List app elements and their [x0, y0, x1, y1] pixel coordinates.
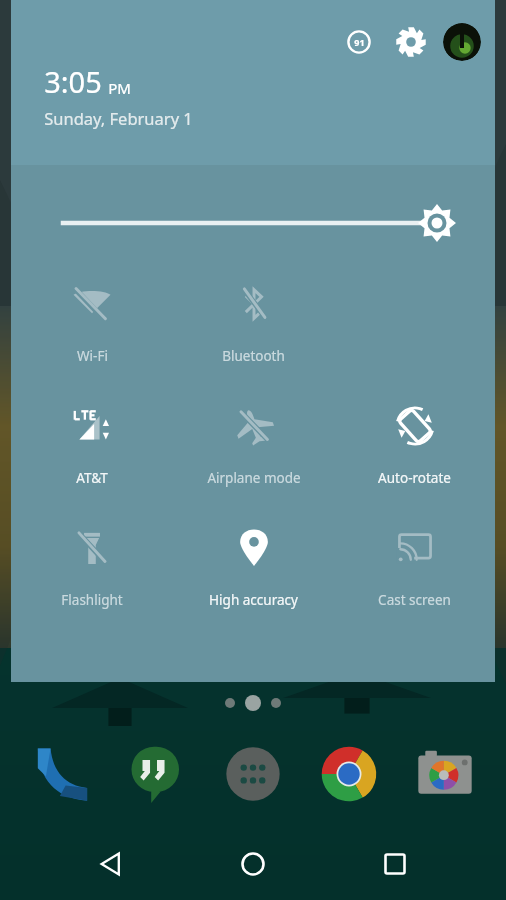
button[interactable]: Battery 91 percent: [339, 22, 379, 62]
button[interactable]: Back: [80, 833, 142, 895]
button[interactable]: High accuracy: [173, 515, 334, 625]
button[interactable]: Chrome: [314, 739, 384, 809]
button[interactable]: User profile: [443, 23, 481, 61]
staticText: 3:05: [44, 62, 102, 101]
staticText: AT&T: [76, 469, 108, 487]
staticText: 91: [354, 36, 365, 48]
button[interactable]: Auto-rotate: [334, 393, 495, 503]
staticText: Wi-Fi: [77, 347, 108, 365]
staticText: High accuracy: [209, 591, 298, 609]
button[interactable]: Apps: [218, 739, 288, 809]
button[interactable]: Settings: [389, 20, 433, 64]
button[interactable]: Home: [222, 833, 284, 895]
staticText: Sunday, February 1: [44, 107, 193, 129]
button[interactable]: Wi-Fi: [11, 271, 173, 381]
button[interactable]: AT&T: [11, 393, 173, 503]
staticText: Flashlight: [61, 591, 123, 609]
button[interactable]: Airplane mode: [173, 393, 334, 503]
staticText: Airplane mode: [207, 469, 301, 487]
button[interactable]: Brightness: [11, 203, 495, 243]
button[interactable]: Hangouts: [122, 739, 192, 809]
button[interactable]: Phone: [26, 739, 96, 809]
button[interactable]: Cast screen: [334, 515, 495, 625]
button[interactable]: Recent apps: [364, 833, 426, 895]
staticText: Bluetooth: [222, 347, 285, 365]
button[interactable]: Flashlight: [11, 515, 173, 625]
staticText: Cast screen: [378, 591, 451, 609]
button[interactable]: Camera: [410, 739, 480, 809]
button[interactable]: Bluetooth: [173, 271, 334, 381]
staticText: PM: [108, 78, 131, 98]
staticText: Auto-rotate: [378, 469, 451, 487]
